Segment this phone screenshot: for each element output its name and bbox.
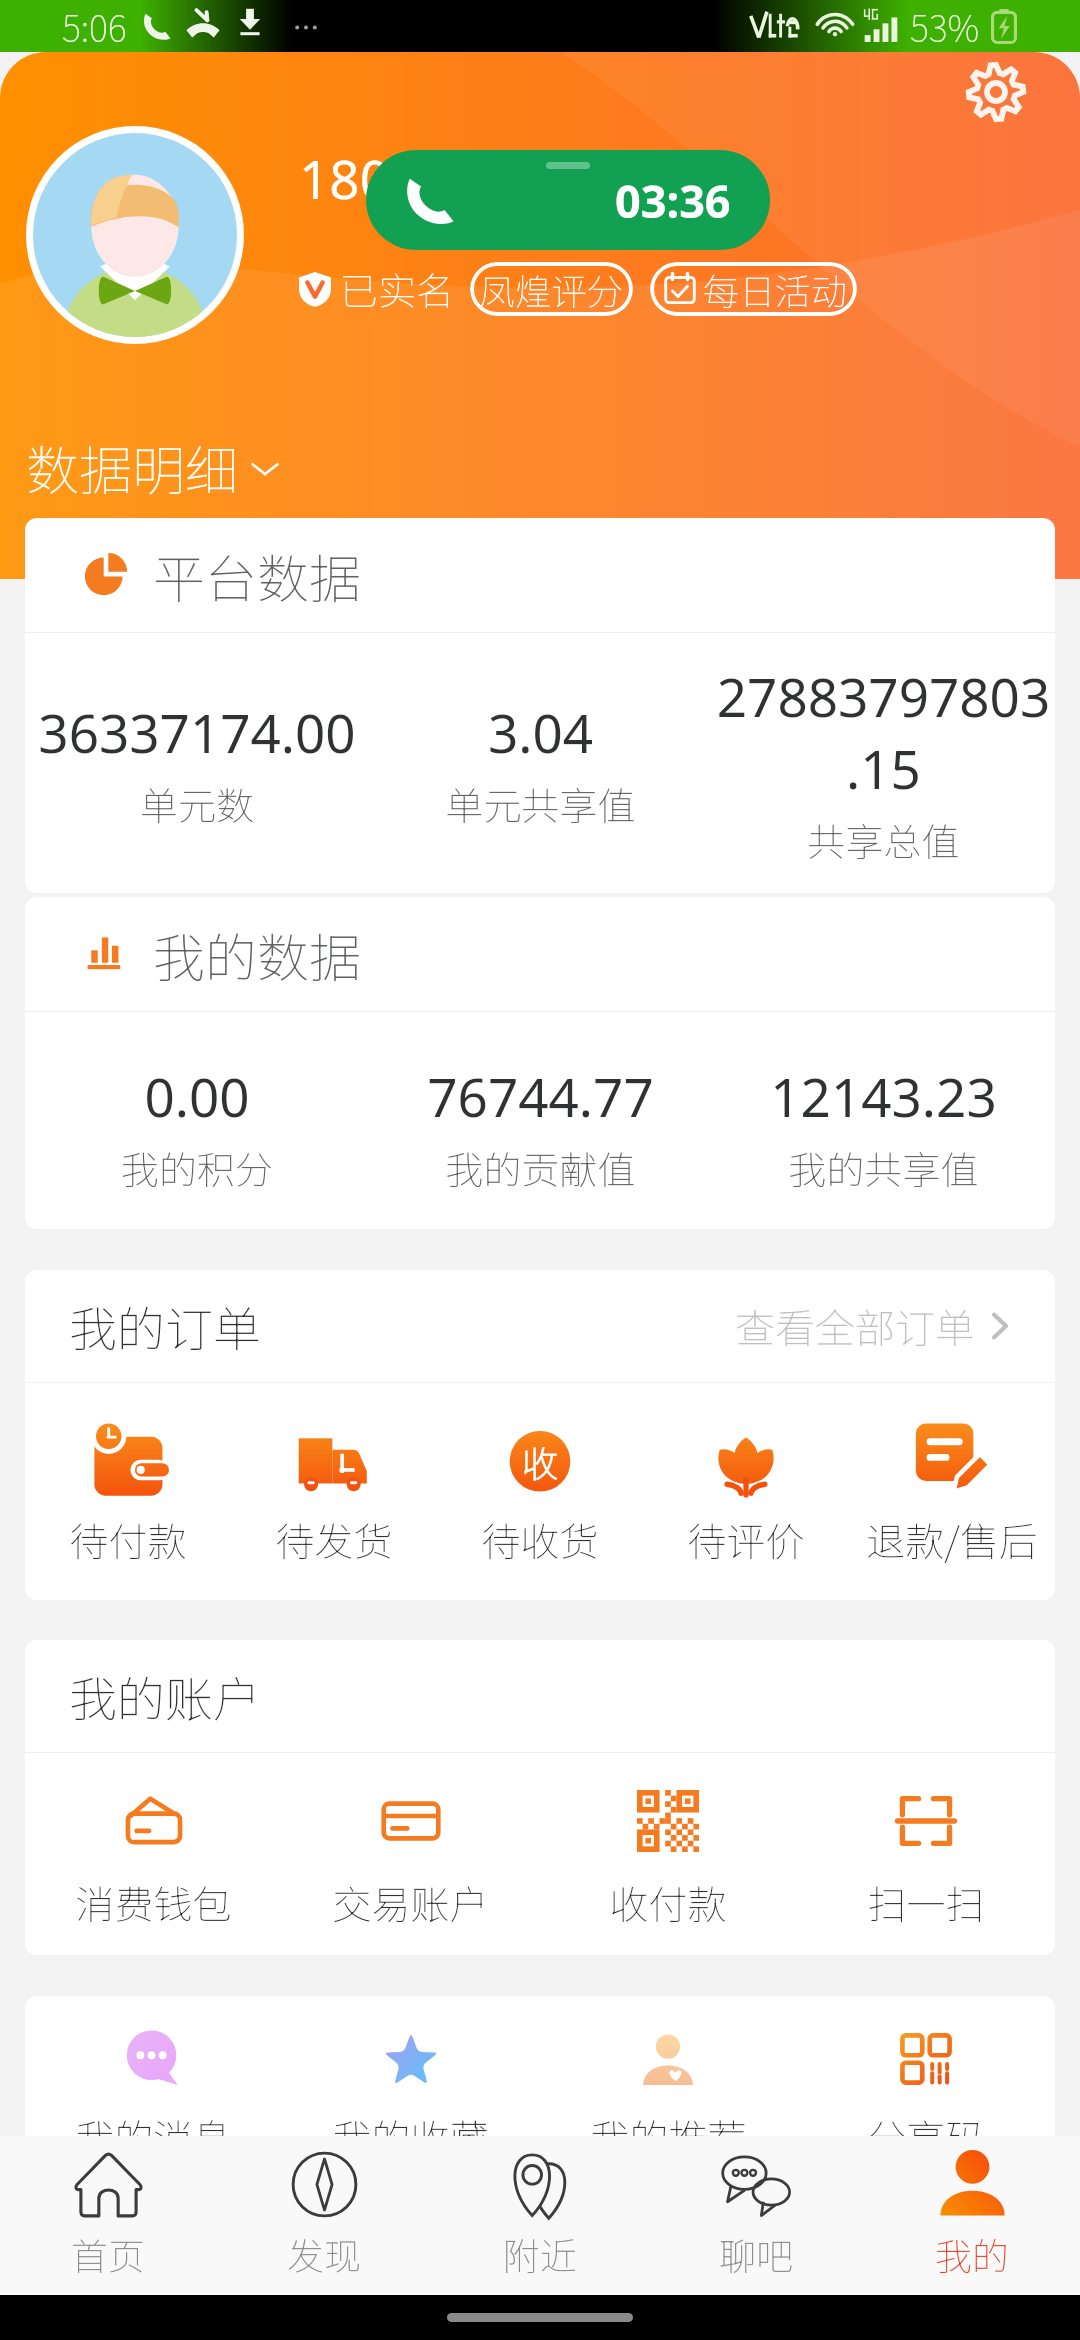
staticText: 已实名 <box>340 261 455 316</box>
button[interactable]: 我的账户 <box>69 1640 1019 1752</box>
button[interactable]: 收付款 <box>539 1790 797 1930</box>
button[interactable]: 扫一扫 <box>797 1790 1055 1930</box>
staticText: 5:06 <box>62 0 127 52</box>
staticText: 我的订单 <box>69 1291 262 1361</box>
staticText: 0.00 <box>26 1060 368 1132</box>
button[interactable]: 数据明细 <box>26 429 284 506</box>
button[interactable]: 待评价 <box>643 1417 849 1567</box>
button[interactable]: 首页 <box>0 2136 216 2295</box>
staticText: 36337174.00 <box>26 696 368 768</box>
staticText: 首页 <box>71 2227 145 2281</box>
staticText: 待发货 <box>275 1511 393 1567</box>
staticText: 凤煌评分 <box>479 263 624 315</box>
staticText: 平台数据 <box>153 538 362 613</box>
staticText: 扫一扫 <box>867 1874 985 1930</box>
staticText: 单元数 <box>26 776 368 831</box>
staticText: 待评价 <box>687 1511 805 1567</box>
button[interactable]: 交易账户 <box>282 1790 539 1930</box>
button[interactable]: 我的订单 <box>69 1270 1019 1382</box>
button[interactable]: 附近 <box>432 2136 648 2295</box>
staticText: 聊吧 <box>719 2227 793 2281</box>
staticText: 待付款 <box>69 1511 187 1567</box>
button[interactable]: 我的 <box>864 2136 1080 2295</box>
staticText: 待收货 <box>481 1511 599 1567</box>
staticText: 我的收藏 <box>332 2108 489 2164</box>
button[interactable]: 待发货 <box>231 1417 437 1567</box>
staticText: 我的数据 <box>153 917 362 992</box>
button[interactable]: Settings <box>956 52 1036 132</box>
staticText: 收付款 <box>609 1874 727 1930</box>
button[interactable]: 分享码 <box>797 2028 1055 2164</box>
staticText: 我的贡献值 <box>370 1140 711 1195</box>
staticText: 我的共享值 <box>713 1140 1054 1195</box>
staticText: 共享总值 <box>713 812 1054 867</box>
button[interactable]: 退款/售后 <box>849 1417 1055 1567</box>
button[interactable]: 我的收藏 <box>282 2028 539 2164</box>
button[interactable]: 聊吧 <box>648 2136 864 2295</box>
button[interactable]: 收 <box>437 1417 643 1567</box>
button[interactable]: 每日活动 <box>650 262 857 316</box>
button[interactable]: 我的数据 <box>83 897 1055 1011</box>
button[interactable]: 03:36 <box>366 150 770 250</box>
staticText: 收 <box>522 1435 559 1487</box>
staticText: 我的推荐 <box>590 2108 747 2164</box>
staticText: 消费钱包 <box>75 1874 232 1930</box>
staticText: 12143.23 <box>713 1060 1054 1132</box>
button[interactable]: 平台数据 <box>83 518 1055 632</box>
button[interactable]: 消费钱包 <box>25 1790 282 1930</box>
button[interactable]: 我的消息 <box>25 2028 282 2164</box>
button[interactable]: 我的推荐 <box>539 2028 797 2164</box>
staticText: 分享码 <box>867 2108 985 2164</box>
staticText: 3.04 <box>370 696 711 768</box>
staticText: 我的账户 <box>69 1661 262 1731</box>
staticText: 每日活动 <box>703 263 848 315</box>
staticText: 我的 <box>935 2227 1009 2281</box>
staticText: 数据明细 <box>26 429 238 506</box>
staticText: 27883797803.15 <box>713 660 1054 804</box>
button[interactable]: 发现 <box>216 2136 432 2295</box>
staticText: 我的消息 <box>75 2108 232 2164</box>
staticText: 我的积分 <box>26 1140 368 1195</box>
staticText: 发现 <box>287 2227 361 2281</box>
staticText: 03:36 <box>615 170 731 231</box>
staticText: 53% <box>910 0 980 52</box>
staticText: 附近 <box>503 2227 577 2281</box>
staticText: 单元共享值 <box>370 776 711 831</box>
button[interactable]: 待付款 <box>25 1417 231 1567</box>
staticText: 退款/售后 <box>866 1511 1038 1567</box>
staticText: 76744.77 <box>370 1060 711 1132</box>
staticText: 180 <box>299 142 390 214</box>
staticText: 查看全部订单 <box>735 1297 975 1355</box>
staticText: 交易账户 <box>332 1874 489 1930</box>
button[interactable]: 凤煌评分 <box>470 262 633 316</box>
